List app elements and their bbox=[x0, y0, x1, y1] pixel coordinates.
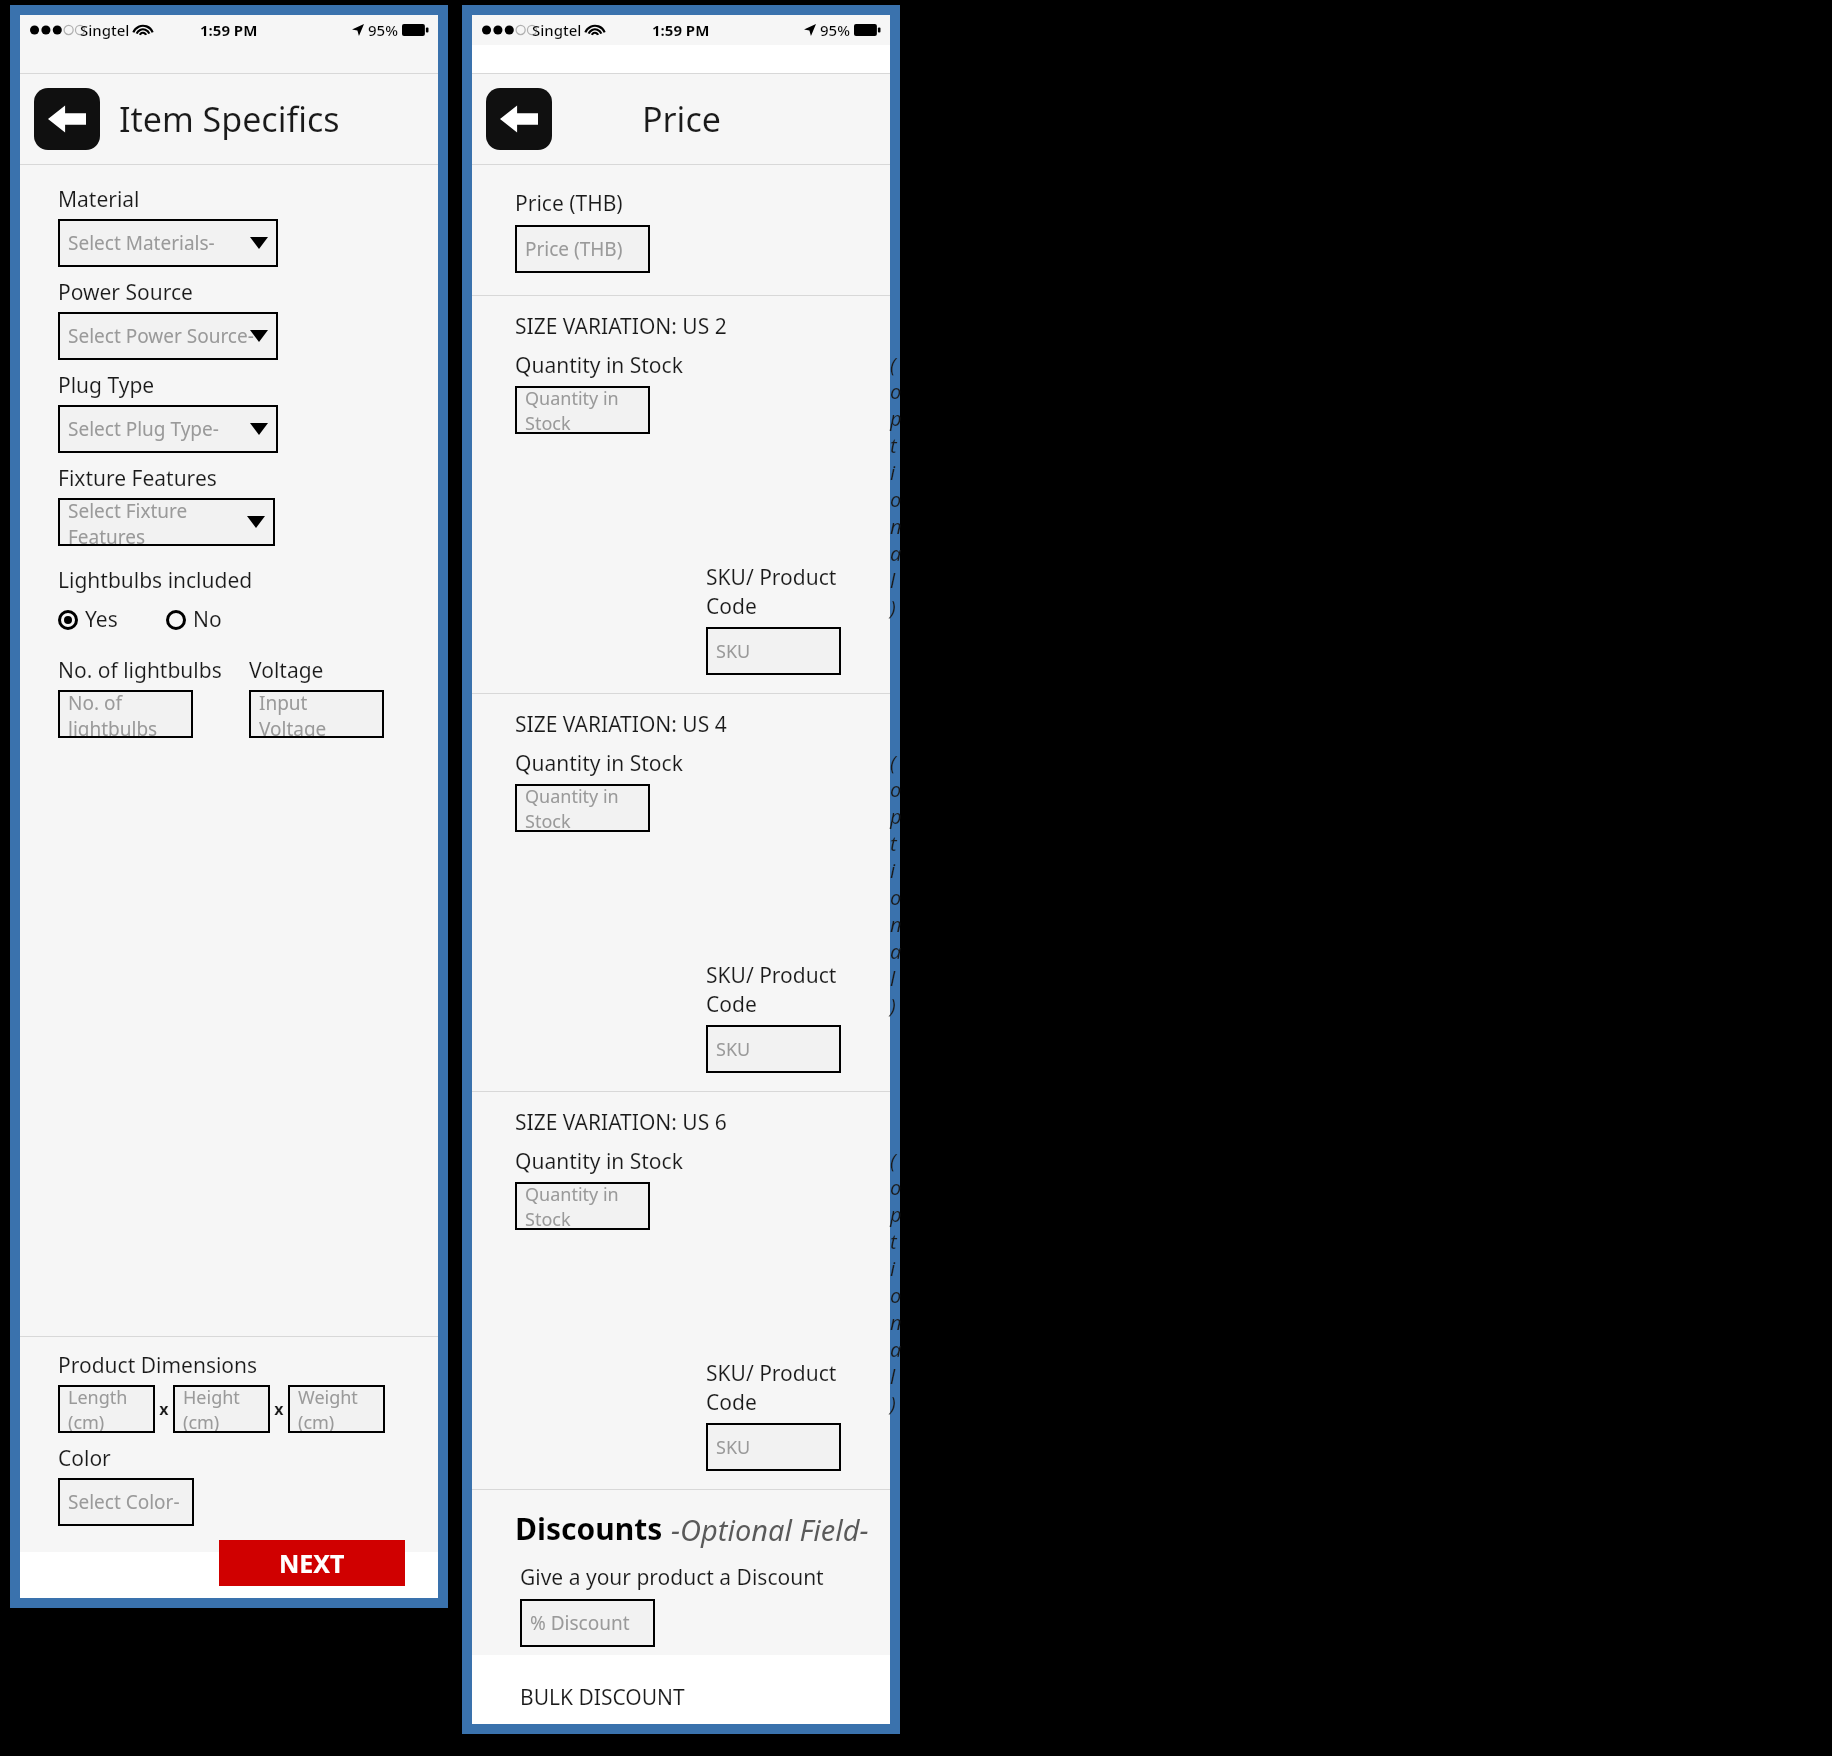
staticText: 1:59 PM bbox=[200, 20, 258, 40]
button[interactable]: Back bbox=[34, 88, 100, 150]
button[interactable]: Select Materials- bbox=[58, 219, 278, 267]
staticText: Length (cm) bbox=[68, 1385, 145, 1433]
staticText: Price (THB) bbox=[515, 189, 623, 218]
button[interactable]: SKU bbox=[706, 1025, 841, 1073]
button[interactable]: No bbox=[166, 605, 222, 634]
staticText: Input Voltage bbox=[259, 690, 374, 738]
staticText: No. of lightbulbs bbox=[68, 690, 183, 738]
staticText: No. of lightbulbs bbox=[58, 656, 222, 685]
staticText: Select Materials- bbox=[68, 230, 215, 256]
staticText: Quantity in Stock bbox=[515, 749, 683, 778]
button[interactable]: SKU bbox=[706, 627, 841, 675]
staticText: Give a your product a Discount bbox=[520, 1563, 824, 1592]
button[interactable]: Height (cm) bbox=[173, 1385, 270, 1433]
staticText: Material bbox=[58, 185, 140, 214]
staticText: No bbox=[193, 605, 222, 634]
button[interactable]: Select Power Source- bbox=[58, 312, 278, 360]
button[interactable]: Price (THB) bbox=[515, 225, 650, 273]
staticText: Select Fixture Features bbox=[68, 498, 265, 546]
button[interactable]: Input Voltage bbox=[249, 690, 384, 738]
staticText: Product Dimensions bbox=[58, 1351, 258, 1380]
staticText: Select Power Source- bbox=[68, 323, 254, 349]
staticText: Price (THB) bbox=[525, 236, 623, 262]
button[interactable]: Weight (cm) bbox=[288, 1385, 385, 1433]
staticText: Weight (cm) bbox=[298, 1385, 375, 1433]
staticText: Quantity in Stock bbox=[525, 784, 640, 832]
staticText: SKU bbox=[716, 1435, 751, 1460]
staticText: Select Plug Type- bbox=[68, 416, 219, 442]
staticText: Price bbox=[642, 96, 721, 142]
button[interactable]: Select Fixture Features bbox=[58, 498, 275, 546]
button[interactable]: NEXT bbox=[219, 1540, 405, 1586]
staticText: NEXT bbox=[279, 1546, 345, 1580]
button[interactable]: Quantity in Stock bbox=[515, 784, 650, 832]
button[interactable]: No. of lightbulbs bbox=[58, 690, 193, 738]
staticText: Quantity in Stock bbox=[515, 1147, 683, 1176]
staticText: Color bbox=[58, 1444, 111, 1473]
staticText: Plug Type bbox=[58, 371, 155, 400]
button[interactable]: Select Color- bbox=[58, 1478, 194, 1526]
staticText: Yes bbox=[85, 605, 118, 634]
staticText: -Optional Field- bbox=[671, 1510, 869, 1549]
staticText: Power Source bbox=[58, 278, 193, 307]
button[interactable]: Length (cm) bbox=[58, 1385, 155, 1433]
staticText: % Discount bbox=[530, 1610, 630, 1636]
button[interactable]: Quantity in Stock bbox=[515, 1182, 650, 1230]
staticText: Singtel bbox=[532, 20, 582, 40]
staticText: Quantity in Stock bbox=[525, 386, 640, 434]
staticText: Voltage bbox=[249, 656, 324, 685]
staticText: x bbox=[270, 1398, 288, 1420]
staticText: BULK DISCOUNT bbox=[520, 1683, 685, 1712]
staticText: Discounts bbox=[515, 1508, 671, 1549]
staticText: Quantity in Stock bbox=[525, 1182, 640, 1230]
staticText: Singtel bbox=[80, 20, 130, 40]
staticText: SIZE VARIATION: US 6 bbox=[515, 1108, 727, 1137]
staticText: SIZE VARIATION: US 4 bbox=[515, 710, 727, 739]
staticText: Quantity in Stock bbox=[515, 351, 683, 380]
staticText: SIZE VARIATION: US 2 bbox=[515, 312, 727, 341]
staticText: SKU/ Product Code bbox=[706, 1359, 890, 1417]
button[interactable]: Back bbox=[486, 88, 552, 150]
staticText: Lightbulbs included bbox=[58, 566, 253, 595]
button[interactable]: Select Plug Type- bbox=[58, 405, 278, 453]
staticText: SKU/ Product Code bbox=[706, 961, 890, 1019]
staticText: 95% bbox=[368, 20, 398, 40]
staticText: Item Specifics bbox=[119, 96, 340, 142]
staticText: Select Color- bbox=[68, 1489, 180, 1515]
staticText: Height (cm) bbox=[183, 1385, 260, 1433]
staticText: SKU/ Product Code bbox=[706, 563, 890, 621]
button[interactable]: Yes bbox=[58, 605, 118, 634]
staticText: 95% bbox=[820, 20, 850, 40]
staticText: x bbox=[155, 1398, 173, 1420]
staticText: SKU bbox=[716, 1037, 751, 1062]
button[interactable]: Quantity in Stock bbox=[515, 386, 650, 434]
button[interactable]: % Discount bbox=[520, 1599, 655, 1647]
button[interactable]: SKU bbox=[706, 1423, 841, 1471]
staticText: 1:59 PM bbox=[652, 20, 710, 40]
staticText: Fixture Features bbox=[58, 464, 217, 493]
staticText: SKU bbox=[716, 639, 751, 664]
